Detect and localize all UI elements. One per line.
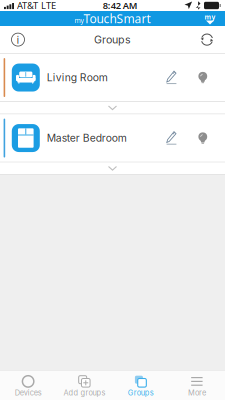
button[interactable]: Devices xyxy=(0,371,56,400)
button[interactable]: Toggle lights for Living Room xyxy=(198,72,207,83)
staticText: i xyxy=(16,32,19,47)
staticText: Groups xyxy=(128,388,154,397)
staticText: 8:42 AM xyxy=(103,0,138,12)
button[interactable]: Living Room xyxy=(0,54,225,101)
button[interactable]: Add groups xyxy=(56,371,112,400)
staticText: Master Bedroom xyxy=(47,132,127,144)
button[interactable]: Master Bedroom xyxy=(0,114,225,162)
staticText: More xyxy=(188,388,206,397)
button[interactable]: Edit Master Bedroom xyxy=(166,131,176,145)
staticText: LTE xyxy=(41,0,56,12)
button[interactable]: More xyxy=(169,371,225,400)
button[interactable]: Edit Living Room xyxy=(166,71,176,84)
staticText: my xyxy=(204,13,215,21)
staticText: my xyxy=(74,16,83,25)
staticText: Devices xyxy=(15,388,42,397)
staticText: Groups xyxy=(94,33,131,46)
staticText: TouchSmart xyxy=(83,10,150,26)
staticText: AT&T xyxy=(17,0,38,12)
button[interactable]: Refresh xyxy=(192,26,222,53)
button[interactable]: Toggle lights for Master Bedroom xyxy=(198,132,207,144)
button[interactable]: Expand group xyxy=(0,162,225,174)
button[interactable]: Groups xyxy=(112,371,169,400)
button[interactable]: myTouchSmart logo xyxy=(202,11,218,26)
button[interactable]: Expand group xyxy=(0,102,225,114)
staticText: Living Room xyxy=(47,71,108,84)
button[interactable]: Info xyxy=(3,26,33,53)
staticText: Add groups xyxy=(63,388,105,397)
